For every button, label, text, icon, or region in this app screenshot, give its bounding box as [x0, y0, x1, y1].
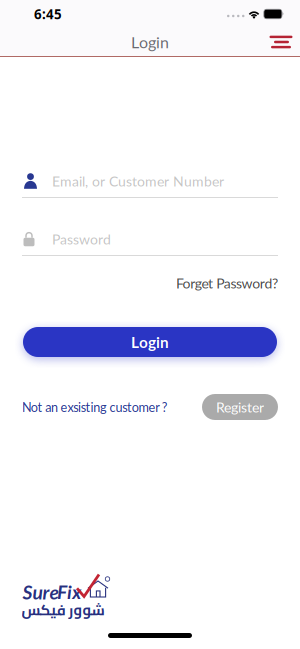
staticText: 6:45 [34, 5, 62, 23]
staticText: Email, or Customer Number [52, 173, 224, 189]
staticText: Forget Password? [176, 275, 278, 291]
button[interactable]: Register [202, 394, 278, 420]
staticText: Password [52, 231, 111, 247]
button[interactable]: Menu [265, 28, 300, 56]
staticText: Sure [22, 580, 58, 604]
staticText: شوور فيكس [21, 596, 104, 624]
staticText: Not an exsisting customer ? [22, 399, 168, 415]
staticText: Login [131, 333, 169, 351]
staticText: Fix [57, 580, 81, 604]
button[interactable]: Login [22, 327, 278, 357]
staticText: Register [216, 399, 264, 415]
button[interactable]: Not an exsisting customer ? [22, 399, 168, 415]
button[interactable]: Forget Password? [176, 275, 278, 291]
staticText: Login [131, 32, 169, 52]
